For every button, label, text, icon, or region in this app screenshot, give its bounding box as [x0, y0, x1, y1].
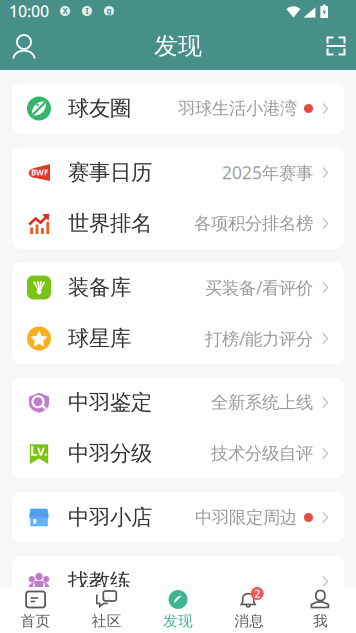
staticText: X	[62, 6, 67, 16]
staticText: 中羽小店	[68, 504, 152, 531]
button[interactable]: 社区	[71, 587, 142, 633]
staticText: 中羽分级	[68, 440, 152, 467]
staticText: 中羽鉴定	[68, 389, 152, 416]
button[interactable]: 2	[214, 587, 285, 633]
button[interactable]: Profile	[7, 29, 41, 63]
staticText: 社区	[92, 612, 122, 630]
staticText: 打榜/能力评分	[205, 327, 313, 350]
staticText: 球友圈	[68, 95, 131, 122]
staticText: 2	[254, 586, 260, 601]
button[interactable]: 发现	[142, 587, 214, 633]
staticText: 2025年赛事	[222, 161, 313, 184]
button[interactable]: 找教练	[12, 556, 344, 607]
button[interactable]: 我	[285, 587, 356, 633]
staticText: Lv.	[30, 442, 48, 459]
staticText: 羽球生活小港湾	[178, 98, 297, 119]
staticText: 我	[313, 612, 328, 630]
staticText: 消息	[234, 612, 264, 630]
staticText: 技术分级自评	[211, 443, 313, 464]
button[interactable]: 球友圈	[12, 83, 344, 134]
staticText: 10:00	[9, 0, 49, 22]
staticText: I	[85, 6, 88, 16]
button[interactable]: 装备库	[12, 262, 344, 313]
staticText: 各项积分排名榜	[194, 213, 313, 234]
button[interactable]: BWF	[12, 147, 344, 198]
staticText: 首页	[21, 612, 51, 630]
button[interactable]: 球星库	[12, 313, 344, 364]
staticText: 世界排名	[68, 210, 152, 237]
staticText: 买装备/看评价	[205, 276, 313, 299]
button[interactable]: Scan	[319, 29, 353, 63]
staticText: 中羽限定周边	[195, 507, 297, 528]
button[interactable]: 首页	[0, 587, 71, 633]
button[interactable]: Lv.	[12, 428, 344, 479]
staticText: 球星库	[68, 325, 131, 352]
staticText: 装备库	[68, 274, 131, 301]
staticText: 全新系统上线	[211, 392, 313, 413]
staticText: 找教练	[68, 568, 131, 595]
staticText: 发现	[163, 612, 193, 630]
staticText: g	[106, 6, 111, 16]
button[interactable]: 世界排名	[12, 198, 344, 249]
staticText: 赛事日历	[68, 159, 152, 186]
staticText: BWF	[31, 167, 48, 178]
button[interactable]: 中羽鉴定	[12, 377, 344, 428]
button[interactable]: 中羽小店	[12, 492, 344, 543]
staticText: 发现	[154, 31, 202, 61]
